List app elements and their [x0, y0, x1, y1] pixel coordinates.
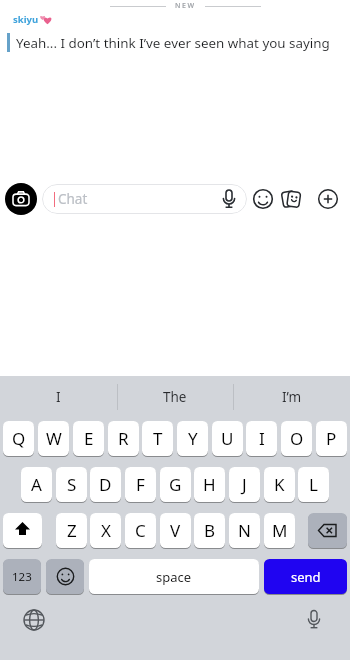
button[interactable]: [300, 606, 328, 634]
button[interactable]: G: [160, 467, 191, 502]
button[interactable]: E: [73, 421, 104, 456]
staticText: B: [204, 519, 216, 542]
button[interactable]: S: [56, 467, 87, 502]
button[interactable]: O: [281, 421, 312, 456]
staticText: NEW: [175, 1, 196, 11]
staticText: W: [46, 427, 62, 450]
button[interactable]: send: [264, 559, 347, 594]
button[interactable]: B: [194, 513, 225, 548]
button[interactable]: [5, 183, 37, 215]
button[interactable]: M: [264, 513, 295, 548]
button[interactable]: Chat: [42, 184, 247, 214]
staticText: L: [309, 473, 318, 496]
staticText: skiyu: [13, 13, 39, 26]
staticText: T: [153, 427, 163, 450]
button[interactable]: Y: [177, 421, 208, 456]
staticText: J: [242, 473, 247, 496]
button[interactable]: C: [125, 513, 156, 548]
staticText: Chat: [58, 190, 88, 208]
button[interactable]: [46, 559, 84, 594]
button[interactable]: L: [298, 467, 329, 502]
button[interactable]: [279, 186, 304, 211]
staticText: The: [163, 388, 187, 406]
staticText: 123: [12, 569, 32, 585]
staticText: M: [272, 519, 288, 542]
staticText: N: [238, 519, 251, 542]
button[interactable]: I’m: [233, 376, 350, 418]
button[interactable]: T: [142, 421, 173, 456]
staticText: F: [136, 473, 145, 496]
staticText: Q: [12, 427, 26, 450]
button[interactable]: Q: [3, 421, 34, 456]
button[interactable]: [20, 606, 48, 634]
staticText: C: [135, 519, 146, 542]
staticText: send: [291, 568, 321, 586]
staticText: space: [156, 568, 192, 586]
button[interactable]: J: [229, 467, 260, 502]
staticText: V: [170, 519, 181, 542]
button[interactable]: N: [229, 513, 260, 548]
button[interactable]: [317, 188, 339, 210]
button[interactable]: The: [117, 376, 233, 418]
button[interactable]: A: [21, 467, 52, 502]
staticText: O: [290, 427, 304, 450]
button[interactable]: R: [108, 421, 139, 456]
button[interactable]: I: [0, 376, 117, 418]
staticText: H: [203, 473, 216, 496]
staticText: Z: [67, 519, 77, 542]
staticText: I’m: [282, 388, 302, 406]
staticText: Yeah... I don’t think I’ve ever seen wha…: [16, 34, 330, 52]
button[interactable]: Z: [56, 513, 87, 548]
staticText: R: [118, 427, 129, 450]
staticText: E: [84, 427, 94, 450]
staticText: P: [326, 427, 337, 450]
button[interactable]: Yeah... I don’t think I’ve ever seen wha…: [16, 34, 330, 52]
button[interactable]: I: [246, 421, 277, 456]
staticText: I: [56, 388, 61, 406]
staticText: G: [169, 473, 182, 496]
button[interactable]: F: [125, 467, 156, 502]
button[interactable]: 123: [3, 559, 41, 594]
button[interactable]: V: [160, 513, 191, 548]
button[interactable]: H: [194, 467, 225, 502]
button[interactable]: X: [90, 513, 121, 548]
staticText: A: [31, 473, 42, 496]
button[interactable]: P: [316, 421, 347, 456]
button[interactable]: U: [212, 421, 243, 456]
staticText: X: [101, 519, 111, 542]
button[interactable]: W: [38, 421, 69, 456]
staticText: U: [221, 427, 234, 450]
button[interactable]: space: [89, 559, 259, 594]
staticText: D: [99, 473, 112, 496]
button[interactable]: K: [264, 467, 295, 502]
staticText: I: [259, 427, 265, 450]
staticText: Y: [188, 427, 198, 450]
staticText: S: [67, 473, 77, 496]
button[interactable]: [3, 513, 42, 548]
button[interactable]: [251, 187, 275, 211]
button[interactable]: D: [90, 467, 121, 502]
button[interactable]: [308, 513, 347, 548]
staticText: K: [274, 473, 285, 496]
